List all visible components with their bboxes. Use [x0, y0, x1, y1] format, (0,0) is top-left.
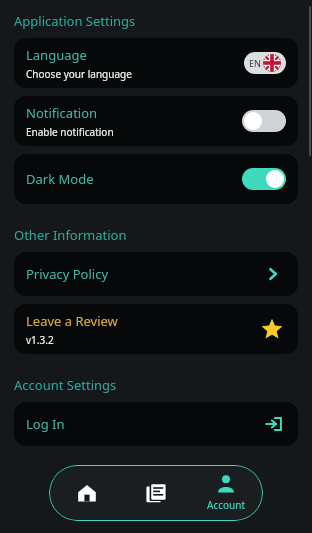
staticText: Notification — [26, 104, 98, 122]
staticText: Dark Mode — [26, 170, 94, 188]
button[interactable]: Toggle off — [242, 110, 286, 132]
button[interactable]: Notification — [14, 96, 298, 146]
button[interactable]: Log In — [14, 402, 298, 446]
button[interactable]: Toggle on — [242, 168, 286, 190]
staticText: EN — [249, 57, 261, 69]
staticText: Application Settings — [14, 12, 136, 30]
button[interactable]: Dark Mode — [14, 154, 298, 204]
staticText: Language — [26, 46, 87, 64]
staticText: Account — [207, 498, 246, 512]
other: Log In — [260, 411, 286, 437]
staticText: Privacy Policy — [26, 265, 109, 283]
button[interactable]: Privacy Policy — [14, 252, 298, 296]
button[interactable]: Home — [55, 467, 119, 519]
button[interactable]: Account — [194, 467, 258, 519]
button[interactable]: Leave a Review — [14, 304, 298, 354]
staticText: Leave a Review — [26, 312, 118, 330]
button[interactable]: Language: EN — [244, 52, 286, 74]
button[interactable]: Language — [14, 38, 298, 88]
staticText: Account Settings — [14, 376, 117, 394]
other: Open Privacy Policy — [260, 261, 286, 287]
staticText: Enable notification — [26, 125, 114, 139]
button[interactable]: Documents — [124, 467, 188, 519]
staticText: Choose your language — [26, 67, 132, 81]
staticText: Log In — [26, 415, 65, 433]
other: Rate app — [258, 315, 286, 343]
staticText: v1.3.2 — [26, 333, 54, 347]
staticText: Other Information — [14, 226, 127, 244]
